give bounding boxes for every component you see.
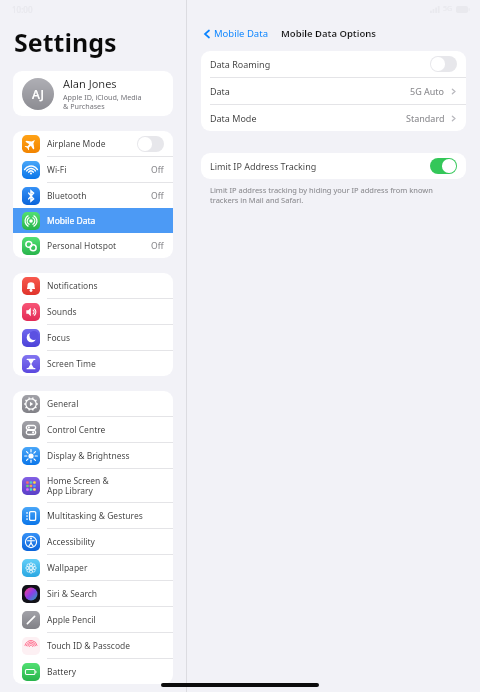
button[interactable]: Airplane Mode xyxy=(13,131,173,156)
staticText: Battery xyxy=(47,666,77,678)
button[interactable]: Sounds xyxy=(13,299,173,324)
button[interactable]: Data Mode xyxy=(201,105,466,131)
staticText: Airplane Mode xyxy=(47,138,106,150)
staticText: Sounds xyxy=(47,306,77,318)
staticText: Off xyxy=(151,190,164,202)
staticText: Multitasking & Gestures xyxy=(47,510,143,522)
button[interactable]: Accessibility xyxy=(13,529,173,554)
button[interactable]: Apple Pencil xyxy=(13,607,173,632)
button[interactable]: Limit IP Address Tracking xyxy=(201,153,466,179)
button[interactable]: Focus xyxy=(13,325,173,350)
staticText: General xyxy=(47,398,79,410)
button[interactable]: Touch ID & Passcode xyxy=(13,633,173,658)
staticText: Off xyxy=(151,164,164,176)
staticText: Off xyxy=(151,240,164,252)
staticText: Settings xyxy=(14,25,117,59)
staticText: Data Mode xyxy=(210,112,257,124)
staticText: Accessibility xyxy=(47,536,95,548)
staticText: Screen Time xyxy=(47,358,96,370)
staticText: 5G Auto xyxy=(410,85,445,97)
staticText: Apple ID, iCloud, Media & Purchases xyxy=(63,92,142,111)
staticText: AJ xyxy=(32,86,44,102)
button[interactable]: Personal Hotspot xyxy=(13,233,173,258)
button[interactable]: Home Screen & App Library xyxy=(13,469,173,502)
staticText: Control Centre xyxy=(47,424,106,436)
button[interactable]: Mobile Data xyxy=(13,208,173,233)
staticText: Personal Hotspot xyxy=(47,240,117,252)
staticText: Touch ID & Passcode xyxy=(47,640,131,652)
button[interactable]: Toggle off xyxy=(137,136,164,152)
staticText: 10:00 xyxy=(12,4,33,15)
button[interactable]: Wallpaper xyxy=(13,555,173,580)
staticText: Notifications xyxy=(47,280,98,292)
staticText: Display & Brightness xyxy=(47,450,130,462)
staticText: Mobile Data xyxy=(47,215,96,227)
staticText: Data Roaming xyxy=(210,58,271,70)
button[interactable]: Data xyxy=(201,78,466,104)
button[interactable]: Notifications xyxy=(13,273,173,298)
button[interactable]: Bluetooth xyxy=(13,183,173,208)
button[interactable]: Control Centre xyxy=(13,417,173,442)
staticText: Mobile Data xyxy=(214,27,268,40)
button[interactable]: AJ xyxy=(13,71,173,116)
button[interactable]: Display & Brightness xyxy=(13,443,173,468)
staticText: Standard xyxy=(406,112,445,124)
staticText: Limit IP address tracking by hiding your… xyxy=(210,185,433,205)
button[interactable]: Wi-Fi xyxy=(13,157,173,182)
button[interactable]: Screen Time xyxy=(13,351,173,376)
staticText: Mobile Data Options xyxy=(281,27,377,40)
button[interactable]: Toggle off xyxy=(430,56,457,72)
staticText: Home Screen & App Library xyxy=(47,475,109,497)
staticText: Focus xyxy=(47,332,70,344)
staticText: Apple Pencil xyxy=(47,614,96,626)
button[interactable]: Toggle on xyxy=(430,158,457,174)
staticText: Wallpaper xyxy=(47,562,88,574)
button[interactable]: General xyxy=(13,391,173,416)
staticText: Bluetooth xyxy=(47,190,87,202)
button[interactable]: Mobile Data xyxy=(200,23,270,44)
button[interactable]: Siri & Search xyxy=(13,581,173,606)
staticText: Data xyxy=(210,85,230,97)
staticText: Limit IP Address Tracking xyxy=(210,160,317,172)
button[interactable]: Data Roaming xyxy=(201,51,466,77)
staticText: Wi-Fi xyxy=(47,164,67,176)
button[interactable]: Multitasking & Gestures xyxy=(13,503,173,528)
button[interactable]: Battery xyxy=(13,659,173,684)
staticText: Siri & Search xyxy=(47,588,98,600)
staticText: Alan Jones xyxy=(63,76,117,91)
